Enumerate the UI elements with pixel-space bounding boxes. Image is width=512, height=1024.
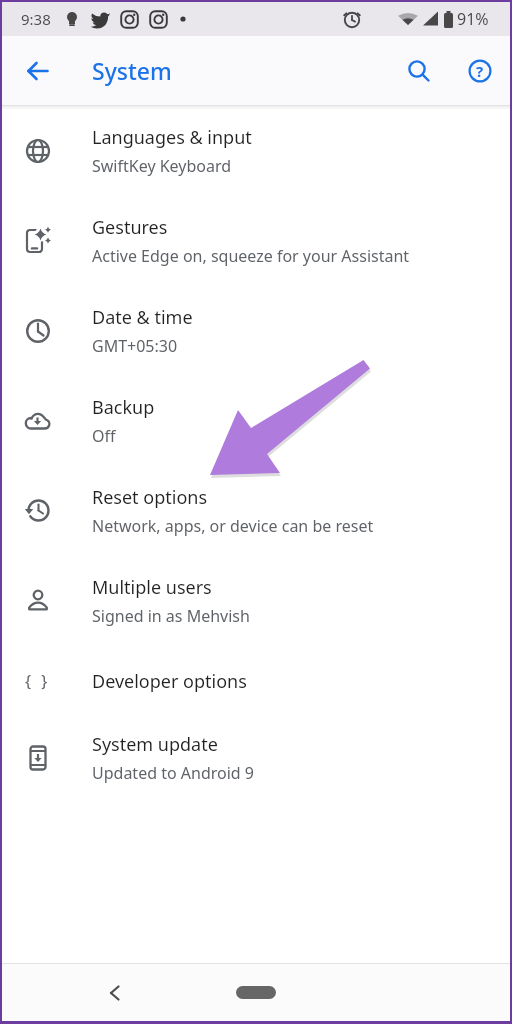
staticText: { } (25, 670, 51, 692)
staticText: 9:38 (21, 9, 51, 29)
staticText: Multiple users (92, 575, 212, 600)
staticText: System (92, 55, 172, 86)
button[interactable] (236, 986, 276, 999)
staticText: System update (92, 732, 218, 757)
button[interactable]: Date & time (2, 286, 510, 376)
staticText: ? (476, 61, 484, 81)
button[interactable]: Gestures (2, 196, 510, 286)
staticText: Reset options (92, 485, 208, 510)
button[interactable]: Languages & input (2, 106, 510, 196)
staticText: Active Edge on, squeeze for your Assista… (92, 245, 410, 267)
button[interactable]: Reset options (2, 466, 510, 556)
staticText: Gestures (92, 215, 168, 240)
button[interactable] (26, 59, 50, 83)
staticText: Backup (92, 395, 155, 420)
button[interactable]: Backup (2, 376, 510, 466)
staticText: GMT+05:30 (92, 335, 178, 357)
staticText: Signed in as Mehvish (92, 605, 250, 627)
staticText: Languages & input (92, 125, 252, 150)
staticText: SwiftKey Keyboard (92, 155, 232, 177)
staticText: Network, apps, or device can be reset (92, 515, 374, 537)
staticText: Date & time (92, 305, 193, 330)
button[interactable]: ? (468, 59, 492, 83)
button[interactable] (98, 977, 130, 1009)
staticText: Off (92, 425, 116, 447)
button[interactable] (407, 59, 431, 83)
button[interactable]: System update (2, 716, 510, 800)
staticText: 91% (457, 8, 489, 30)
staticText: Developer options (92, 669, 247, 694)
button[interactable]: { } (2, 646, 510, 716)
button[interactable]: Multiple users (2, 556, 510, 646)
staticText: Updated to Android 9 (92, 762, 254, 784)
